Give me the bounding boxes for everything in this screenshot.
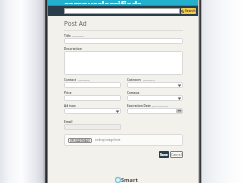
button[interactable] <box>64 82 121 88</box>
button[interactable] <box>127 82 183 88</box>
staticText: Title <box>64 34 71 37</box>
button[interactable]: Pick date <box>127 108 183 114</box>
staticText: Search <box>185 9 196 13</box>
button[interactable]: Search <box>181 8 196 14</box>
button[interactable] <box>64 124 121 130</box>
staticText: Category <box>127 78 142 81</box>
staticText: Price <box>64 91 72 94</box>
staticText: Ad type <box>64 104 76 107</box>
staticText: Cancel <box>171 152 182 157</box>
staticText: (mm/dd/yyyy) <box>152 104 169 107</box>
button[interactable] <box>127 95 183 101</box>
staticText: Description <box>64 47 82 50</box>
button[interactable]: Save <box>159 151 169 158</box>
staticText: Campus <box>127 91 140 94</box>
button[interactable] <box>64 95 121 101</box>
button[interactable]: UPLOAD IMAGE <box>68 138 92 143</box>
staticText: Contact <box>64 78 77 81</box>
button[interactable]: Cancel <box>170 151 183 158</box>
button[interactable] <box>64 51 183 75</box>
button[interactable] <box>64 108 121 114</box>
staticText: campusclassifieds <box>64 0 142 4</box>
staticText: or drop image here <box>95 138 121 142</box>
staticText: Smart <box>121 176 138 183</box>
staticText: Email <box>64 120 73 123</box>
staticText: (required) <box>143 78 155 81</box>
staticText: Expiration Date <box>127 104 151 107</box>
staticText: (required) <box>72 34 84 37</box>
staticText: Save <box>160 152 168 157</box>
button[interactable] <box>64 38 183 44</box>
staticText: Post Ad <box>64 19 87 28</box>
button[interactable]: Pick date <box>176 109 182 113</box>
staticText: (required) <box>78 78 90 81</box>
staticText: UPLOAD IMAGE <box>70 139 90 143</box>
button[interactable] <box>64 8 180 14</box>
